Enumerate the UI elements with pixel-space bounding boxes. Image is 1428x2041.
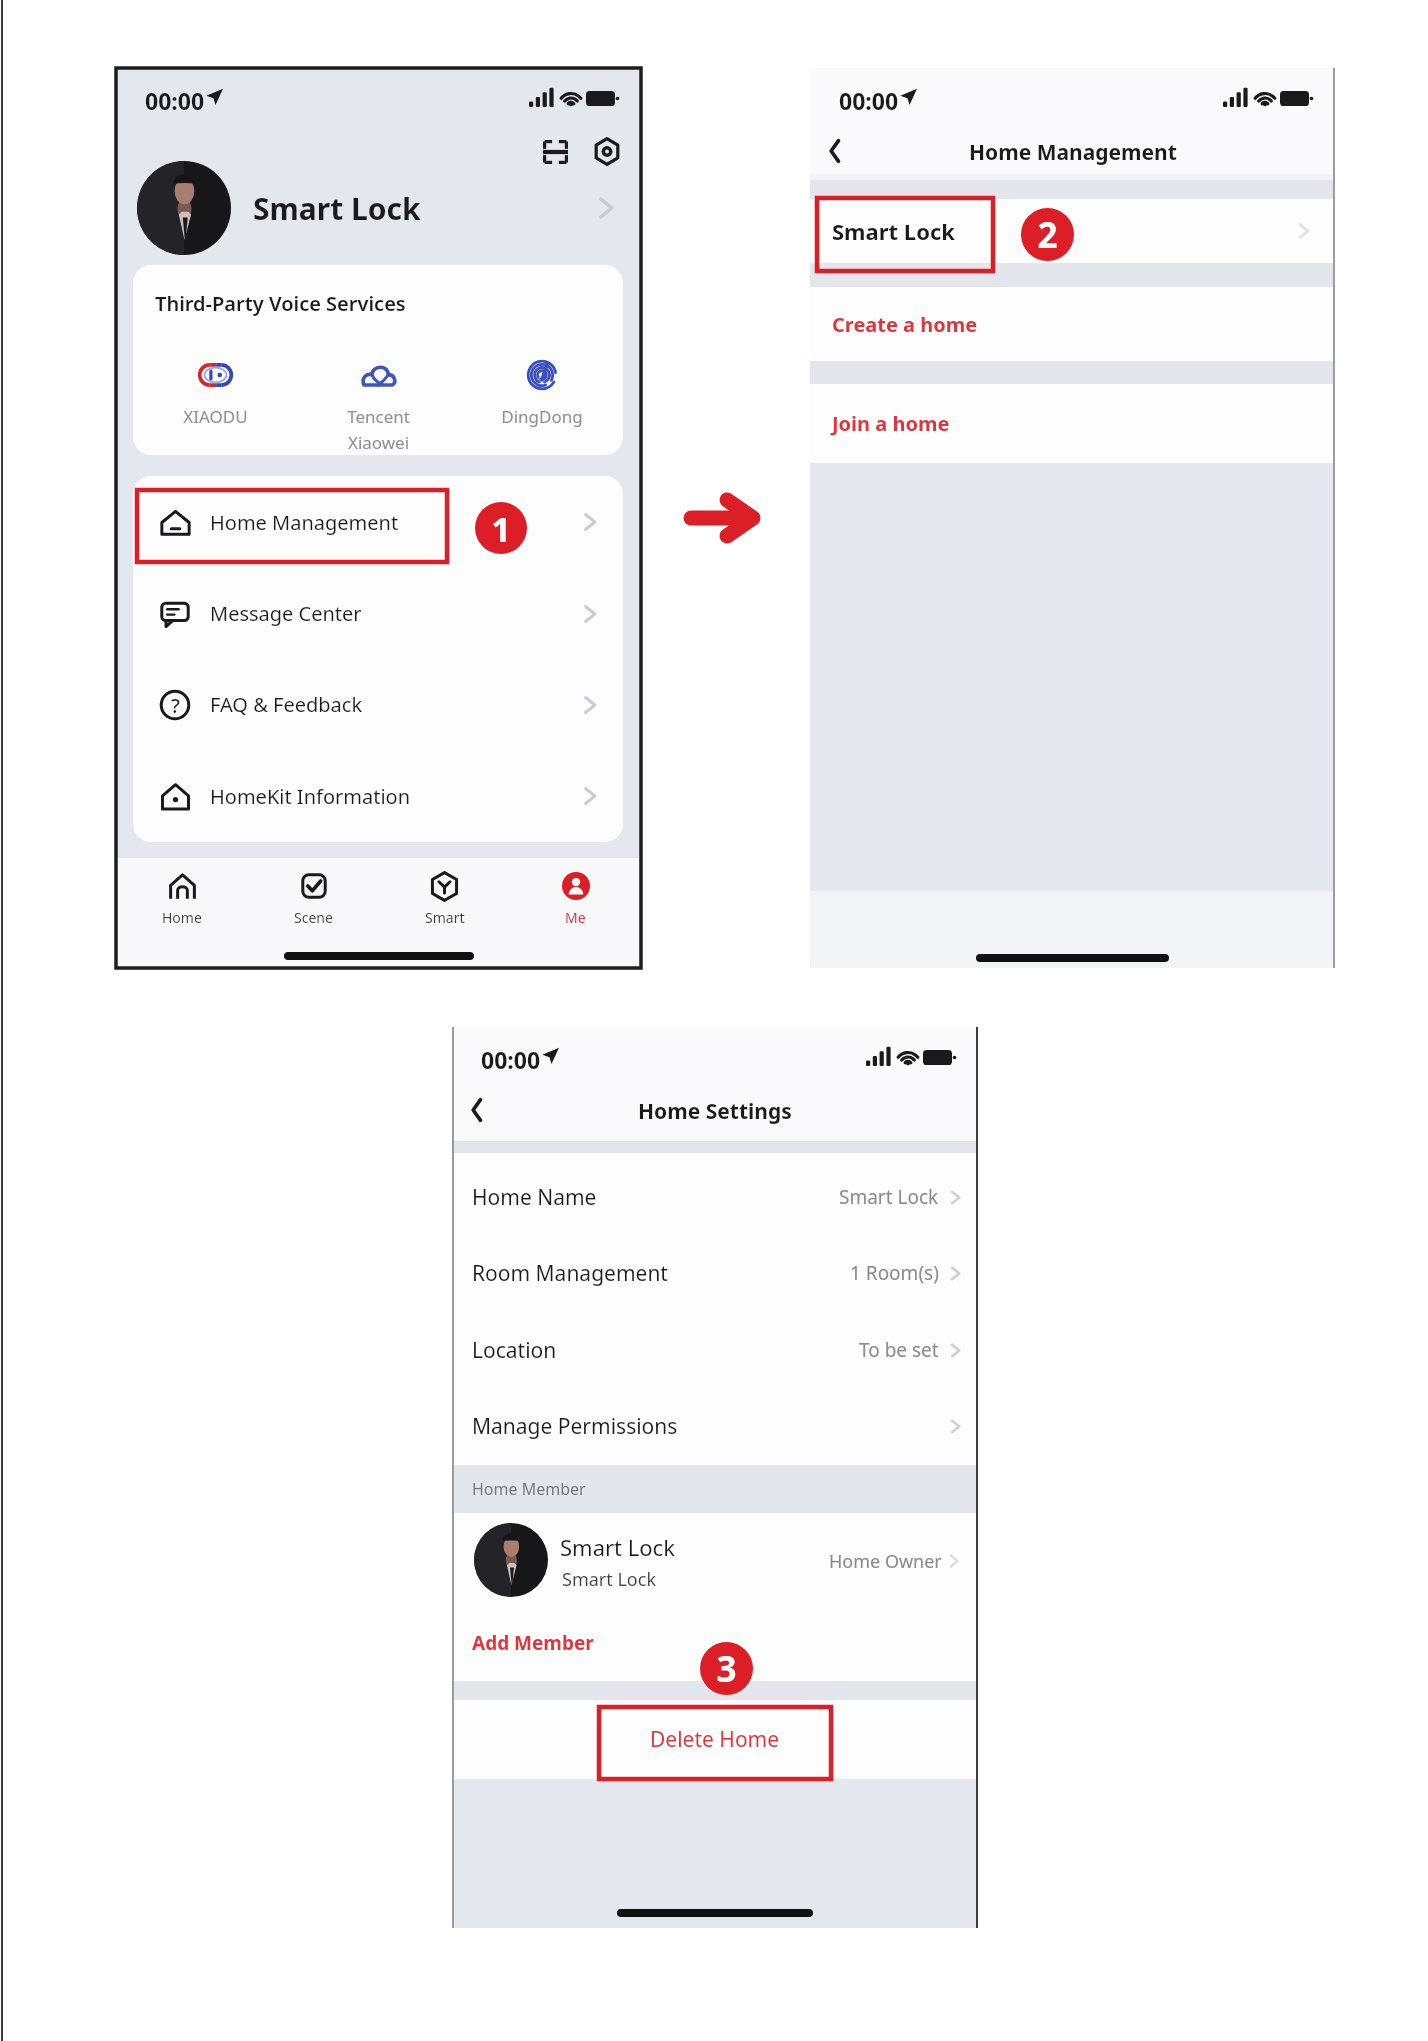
- staticText: Home Member: [472, 1478, 586, 1500]
- button[interactable]: Home Name: [452, 1159, 978, 1235]
- button[interactable]: Add Member: [452, 1613, 978, 1673]
- staticText: Message Center: [210, 600, 362, 627]
- button[interactable]: Smart Lock: [810, 199, 1335, 263]
- button[interactable]: Home: [116, 867, 248, 943]
- button[interactable]: Me: [510, 867, 641, 943]
- staticText: FAQ & Feedback: [210, 691, 363, 718]
- staticText: XIAODU: [183, 405, 248, 428]
- staticText: Delete Home: [650, 1725, 780, 1754]
- staticText: DingDong: [501, 405, 583, 428]
- staticText: Home Management: [969, 138, 1177, 167]
- staticText: To be set: [859, 1337, 939, 1363]
- staticText: Location: [472, 1336, 557, 1365]
- staticText: ?: [171, 692, 180, 719]
- button[interactable]: Room Management: [452, 1235, 978, 1311]
- button[interactable]: DingDong: [460, 358, 623, 428]
- staticText: Home Management: [210, 509, 399, 536]
- staticText: Smart Lock: [832, 216, 955, 246]
- staticText: Home Settings: [638, 1097, 792, 1126]
- staticText: Home Name: [472, 1183, 597, 1212]
- button[interactable]: Manage Permissions: [452, 1388, 978, 1464]
- button[interactable]: Back: [814, 130, 856, 172]
- staticText: Me: [565, 908, 586, 927]
- staticText: Home: [162, 908, 202, 927]
- staticText: 00:00: [145, 85, 205, 116]
- button[interactable]: Scan: [533, 130, 578, 174]
- button[interactable]: Home Management: [133, 476, 623, 568]
- button[interactable]: Smart Lock: [116, 160, 641, 256]
- staticText: 1: [491, 505, 511, 552]
- staticText: Smart Lock: [562, 1567, 656, 1592]
- staticText: Smart Lock: [253, 188, 421, 229]
- staticText: 2: [1037, 211, 1058, 259]
- button[interactable]: HomeKit Information: [133, 750, 623, 842]
- staticText: Home Owner: [829, 1549, 942, 1574]
- button[interactable]: Join a home: [810, 384, 1335, 463]
- staticText: 00:00: [839, 85, 899, 116]
- staticText: Add Member: [472, 1630, 594, 1656]
- staticText: 3: [716, 1645, 737, 1693]
- staticText: Tencent Xiaowei: [347, 405, 410, 454]
- staticText: 00:00: [481, 1044, 541, 1075]
- staticText: Join a home: [832, 410, 950, 437]
- staticText: Manage Permissions: [472, 1412, 678, 1441]
- button[interactable]: Settings: [584, 129, 629, 173]
- staticText: HomeKit Information: [210, 783, 410, 810]
- button[interactable]: XIAODU: [133, 358, 297, 428]
- button[interactable]: Delete Home: [452, 1700, 978, 1779]
- button[interactable]: Message Center: [133, 568, 623, 659]
- staticText: Third-Party Voice Services: [155, 290, 406, 317]
- button[interactable]: Create a home: [810, 287, 1335, 361]
- button[interactable]: Scene: [248, 867, 379, 943]
- staticText: Smart Lock: [839, 1184, 939, 1210]
- staticText: Scene: [294, 908, 333, 927]
- staticText: Smart Lock: [560, 1532, 675, 1562]
- staticText: Create a home: [832, 311, 978, 338]
- staticText: Smart: [425, 908, 465, 927]
- button[interactable]: Back: [456, 1089, 498, 1131]
- button[interactable]: Tencent Xiaowei: [297, 358, 460, 454]
- staticText: Room Management: [472, 1259, 668, 1288]
- button[interactable]: Location: [452, 1312, 978, 1388]
- button[interactable]: Smart: [379, 867, 510, 943]
- button[interactable]: ?: [133, 659, 623, 750]
- staticText: 1 Room(s): [850, 1260, 939, 1286]
